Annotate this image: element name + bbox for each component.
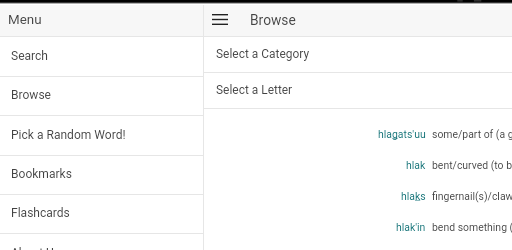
staticText: hlagats'uu xyxy=(378,128,426,140)
staticText: fingernail(s)/claw(s) xyxy=(432,190,512,202)
staticText: Bookmarks xyxy=(11,167,72,181)
staticText: bent/curved (to become) xyxy=(432,159,512,171)
staticText: bend something (to) xyxy=(432,221,512,233)
button[interactable]: Select a Category xyxy=(204,37,512,72)
staticText: Pick a Random Word! xyxy=(11,128,126,142)
staticText: Browse xyxy=(11,88,51,102)
button[interactable]: Search xyxy=(0,37,203,76)
button[interactable]: About Us xyxy=(0,234,203,250)
button[interactable]: hlagats'uu xyxy=(204,118,512,149)
staticText: Search xyxy=(11,49,49,63)
staticText: Menu xyxy=(8,12,42,28)
button[interactable]: hlak'in xyxy=(204,211,512,242)
button[interactable]: Select a Letter xyxy=(204,73,512,108)
staticText: About Us xyxy=(11,246,61,250)
button[interactable]: hlaks xyxy=(204,180,512,211)
staticText: Select a Category xyxy=(216,47,310,61)
button[interactable]: Flashcards xyxy=(0,195,203,233)
button[interactable]: Open navigation drawer xyxy=(204,3,237,36)
staticText: some/part of (a group) xyxy=(432,128,512,140)
staticText: hlaks xyxy=(401,190,426,202)
button[interactable]: Browse xyxy=(0,77,203,115)
button[interactable]: Bookmarks xyxy=(0,156,203,194)
staticText: Select a Letter xyxy=(216,83,293,97)
button[interactable]: Pick a Random Word! xyxy=(0,116,203,155)
staticText: hlak xyxy=(406,159,426,171)
button[interactable]: hlak xyxy=(204,149,512,180)
staticText: Flashcards xyxy=(11,206,70,220)
staticText: hlak'in xyxy=(396,221,426,233)
staticText: Browse xyxy=(250,12,296,28)
